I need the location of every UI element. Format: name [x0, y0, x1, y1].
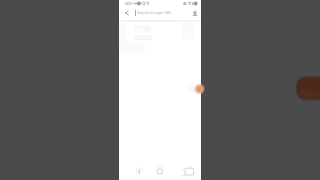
button[interactable]: Back — [122, 8, 131, 17]
button[interactable]: Back — [119, 163, 147, 180]
staticText: Search or type URL — [137, 10, 172, 15]
button[interactable]: Home — [147, 163, 174, 180]
button[interactable]: Recent apps — [174, 163, 201, 180]
button[interactable]: Downloads — [190, 8, 200, 18]
button[interactable]: Search or type URL — [135, 7, 190, 18]
